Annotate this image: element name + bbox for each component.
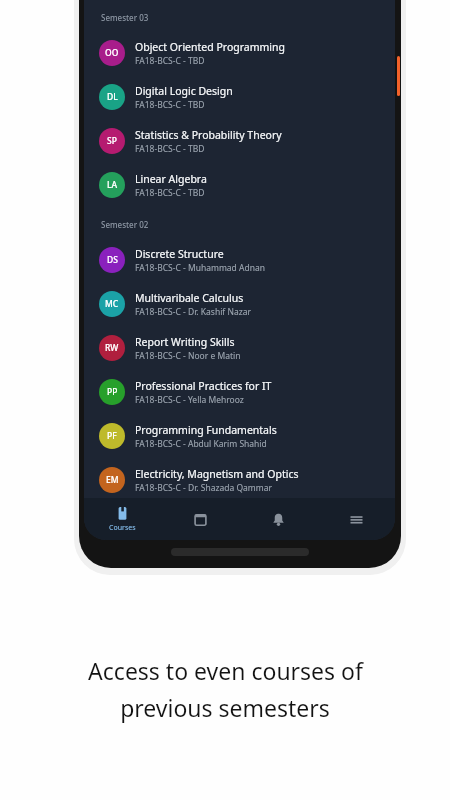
- staticText: Programming Fundamentals: [135, 423, 277, 437]
- button[interactable]: Menu: [317, 498, 395, 540]
- staticText: PF: [107, 430, 117, 442]
- staticText: previous semesters: [120, 692, 330, 723]
- staticText: Statistics & Probability Theory: [135, 128, 282, 142]
- staticText: FA18-BCS-C - TBD: [135, 99, 205, 111]
- button[interactable]: RW: [84, 326, 395, 370]
- button[interactable]: PP: [84, 370, 395, 414]
- staticText: EM: [106, 474, 119, 486]
- button[interactable]: DL: [84, 75, 395, 119]
- staticText: Semester 02: [101, 219, 149, 230]
- staticText: RW: [105, 342, 119, 354]
- staticText: FA18-BCS-C - Dr. Kashif Nazar: [135, 306, 251, 318]
- staticText: FA18-BCS-C - Dr. Shazada Qammar: [135, 482, 273, 494]
- staticText: Professional Practices for IT: [135, 379, 272, 393]
- button[interactable]: MC: [84, 282, 395, 326]
- staticText: DS: [107, 254, 118, 266]
- staticText: FA18-BCS-C - TBD: [135, 143, 205, 155]
- staticText: LA: [107, 179, 118, 191]
- button[interactable]: OO: [84, 31, 395, 75]
- button[interactable]: LA: [84, 163, 395, 207]
- staticText: Access to even courses of: [88, 655, 363, 686]
- staticText: DL: [107, 91, 118, 103]
- button[interactable]: DS: [84, 238, 395, 282]
- staticText: MC: [105, 298, 119, 310]
- button[interactable]: Notifications: [239, 498, 317, 540]
- button[interactable]: Calendar: [161, 498, 239, 540]
- staticText: Discrete Structure: [135, 247, 224, 261]
- staticText: Linear Algebra: [135, 172, 207, 186]
- staticText: FA18-BCS-C - Muhammad Adnan: [135, 262, 265, 274]
- staticText: FA18-BCS-C - TBD: [135, 187, 205, 199]
- staticText: Courses: [109, 523, 136, 533]
- button[interactable]: EM: [84, 458, 395, 502]
- staticText: FA18-BCS-C - TBD: [135, 55, 205, 67]
- staticText: Electricity, Magnetism and Optics: [135, 467, 299, 481]
- staticText: FA18-BCS-C - Noor e Matin: [135, 350, 241, 362]
- staticText: Multivaribale Calculus: [135, 291, 244, 305]
- button[interactable]: SP: [84, 119, 395, 163]
- staticText: Digital Logic Design: [135, 84, 233, 98]
- staticText: FA18-BCS-C - Abdul Karim Shahid: [135, 438, 267, 450]
- staticText: OO: [105, 47, 119, 59]
- staticText: SP: [107, 135, 117, 147]
- staticText: Semester 03: [101, 12, 149, 23]
- button[interactable]: PF: [84, 414, 395, 458]
- staticText: FA18-BCS-C - Yella Mehrooz: [135, 394, 244, 406]
- staticText: Report Writing Skills: [135, 335, 235, 349]
- button[interactable]: Courses: [84, 498, 161, 540]
- staticText: PP: [107, 386, 118, 398]
- staticText: Object Oriented Programming: [135, 40, 286, 54]
